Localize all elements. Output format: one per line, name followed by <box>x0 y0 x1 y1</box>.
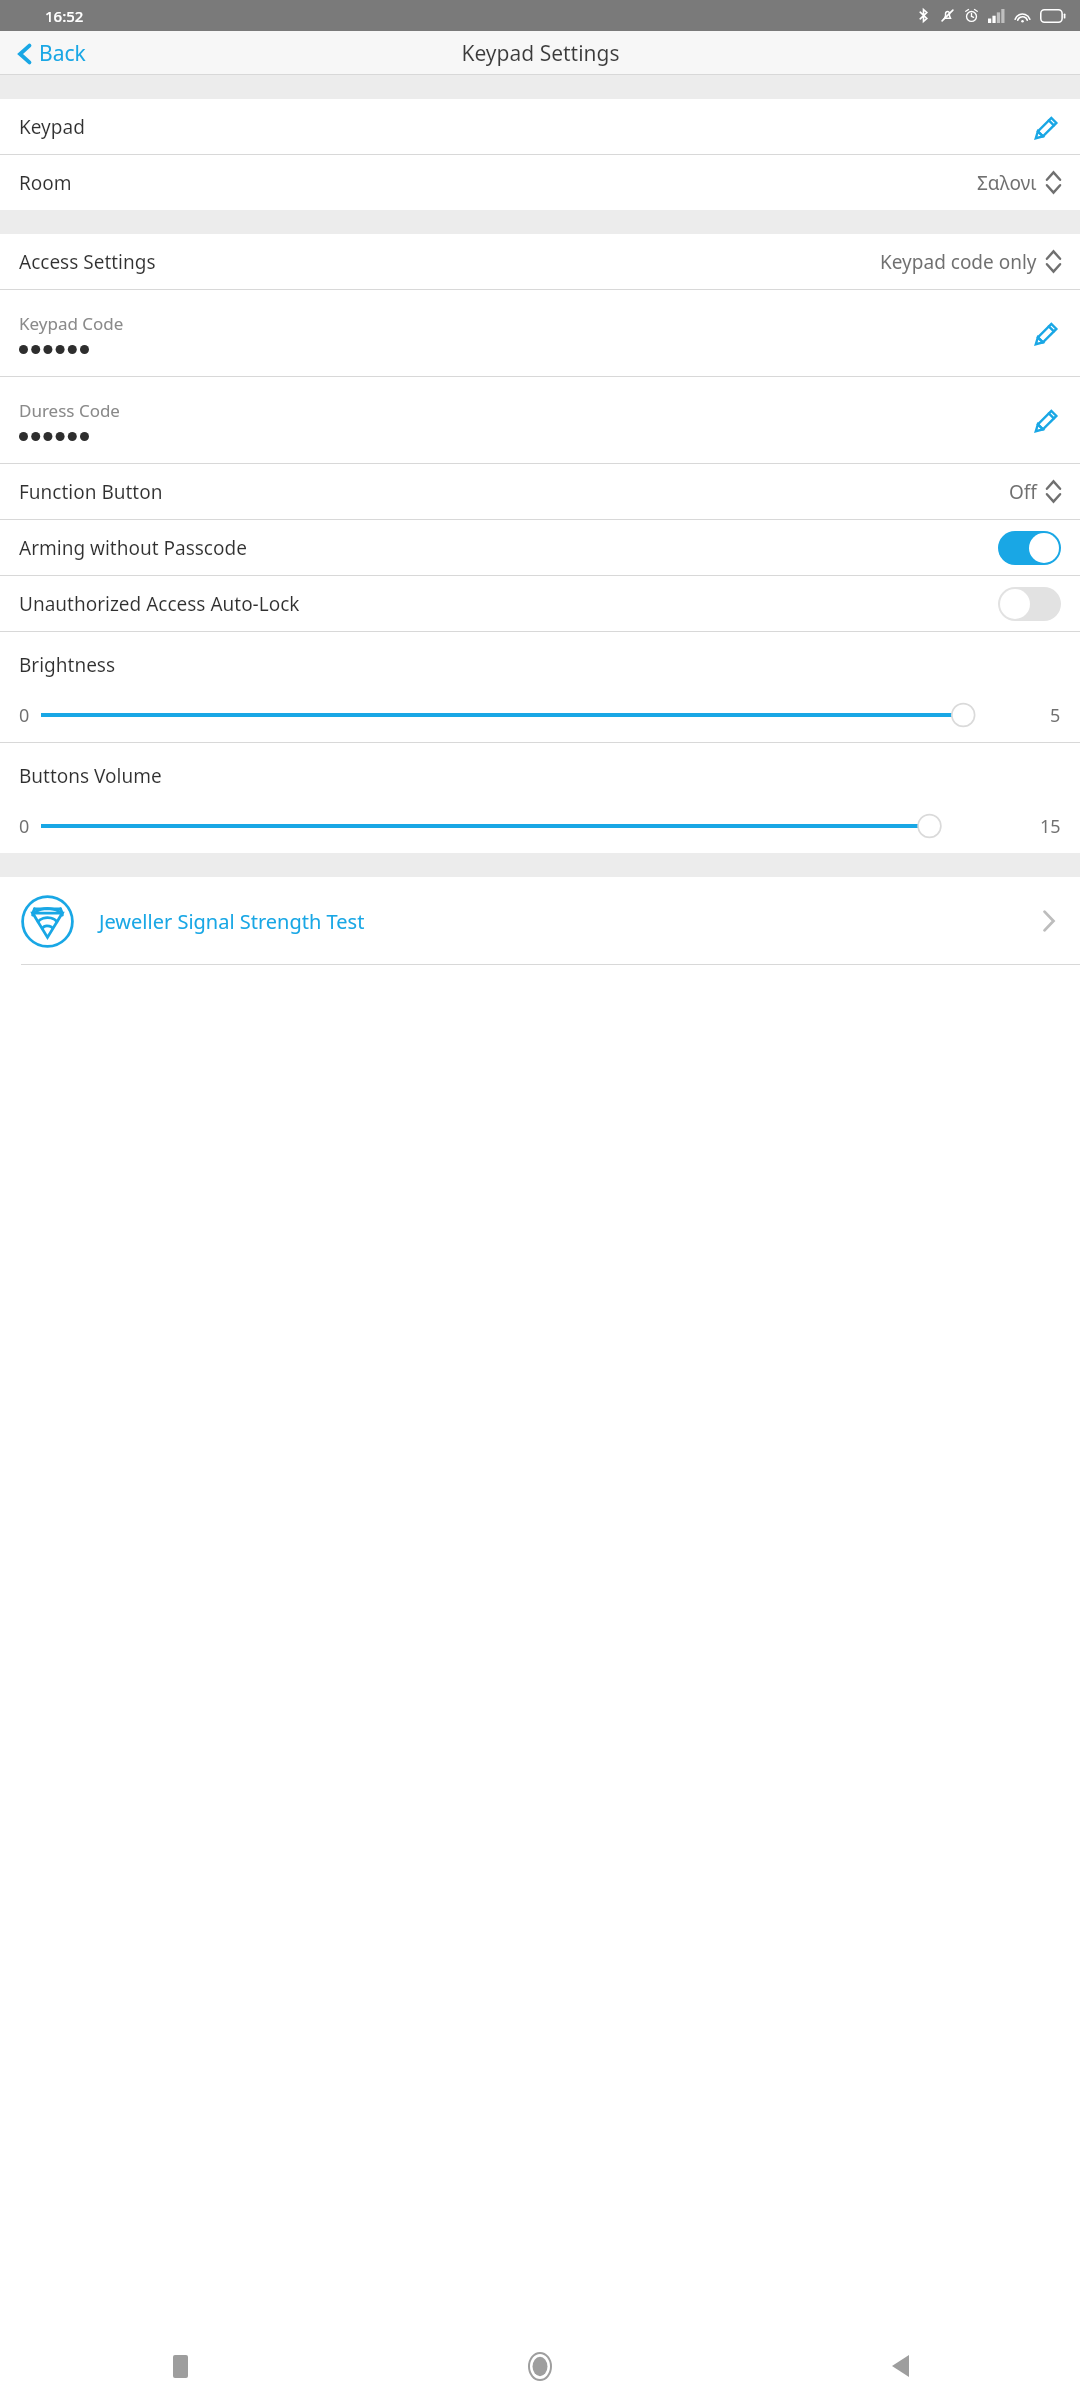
staticText: Function Button <box>19 479 163 505</box>
button[interactable]: Arming without Passcode <box>0 520 1080 575</box>
button[interactable]: Back <box>720 2332 1080 2400</box>
button[interactable]: Back <box>0 33 102 74</box>
staticText: Duress Code <box>19 399 120 422</box>
staticText: Back <box>39 39 86 68</box>
button[interactable]: Keypad Code <box>0 290 1080 376</box>
staticText: Off <box>1009 479 1037 505</box>
other: Select option <box>1046 480 1061 503</box>
button[interactable]: Jeweller <box>0 877 1080 965</box>
other: Select option <box>1046 171 1061 194</box>
button[interactable]: Function Button <box>0 464 1080 519</box>
button[interactable]: Brightness <box>0 632 1080 742</box>
staticText: 0 <box>19 703 30 728</box>
button[interactable]: Unauthorized Access Auto-Lock <box>0 576 1080 631</box>
button[interactable]: Access Settings <box>0 234 1080 289</box>
staticText: 0 <box>19 814 30 839</box>
button[interactable]: Toggle on <box>998 531 1061 565</box>
other: Select option <box>1046 250 1061 273</box>
button[interactable]: Duress Code <box>0 377 1080 463</box>
button[interactable]: Recents <box>0 2332 360 2400</box>
button[interactable]: Keypad <box>0 99 1080 154</box>
staticText: Jeweller Signal Strength Test <box>99 908 365 935</box>
button[interactable]: Buttons Volume <box>0 743 1080 853</box>
other: Edit <box>1033 113 1061 141</box>
other: Edit <box>1033 406 1061 434</box>
staticText: Unauthorized Access Auto-Lock <box>19 591 300 617</box>
staticText: 5 <box>1050 703 1061 728</box>
staticText: Access Settings <box>19 249 156 275</box>
staticText: Room <box>19 170 72 196</box>
button[interactable]: Room <box>0 155 1080 210</box>
button[interactable]: Toggle off <box>998 587 1061 621</box>
staticText: 16:52 <box>45 6 84 26</box>
button[interactable]: Home <box>360 2332 720 2400</box>
staticText: Keypad Settings <box>461 39 620 68</box>
staticText: Buttons Volume <box>19 763 162 789</box>
other: Jeweller <box>21 895 74 948</box>
staticText: Keypad <box>19 114 85 140</box>
other: Brightness slider <box>41 700 1041 730</box>
staticText: Keypad code only <box>880 249 1037 275</box>
other: Edit <box>1033 319 1061 347</box>
staticText: 15 <box>1040 814 1061 839</box>
staticText: Arming without Passcode <box>19 535 247 561</box>
other: Buttons Volume slider <box>41 811 1031 841</box>
staticText: Brightness <box>19 652 116 678</box>
staticText: Keypad Code <box>19 312 124 335</box>
staticText: Σαλονι <box>977 170 1037 196</box>
